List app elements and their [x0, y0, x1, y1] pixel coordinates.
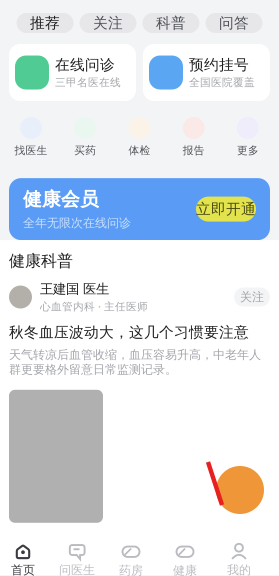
staticText: 买药: [74, 144, 96, 157]
staticText: 关注: [93, 14, 123, 32]
staticText: 王建国 医生: [40, 281, 109, 297]
button[interactable]: 报告: [167, 117, 221, 157]
staticText: 我的: [227, 563, 251, 576]
button[interactable]: 在线问诊: [9, 44, 136, 101]
staticText: 关注: [240, 290, 264, 304]
staticText: 预约挂号: [189, 56, 249, 74]
staticText: 健康: [173, 563, 197, 576]
staticText: 科普: [156, 14, 186, 32]
staticText: 全国医院覆盖: [189, 76, 255, 89]
staticText: 报告: [183, 144, 205, 157]
button[interactable]: 我的: [212, 544, 266, 576]
button[interactable]: 找医生: [4, 117, 58, 157]
button[interactable]: Compose: [216, 466, 264, 514]
button[interactable]: 首页: [0, 544, 50, 576]
button[interactable]: 关注: [234, 287, 270, 306]
staticText: 天气转凉后血管收缩，血压容易升高，中老年人群更要格外留意日常监测记录。: [9, 347, 261, 377]
staticText: 立即开通: [196, 200, 256, 218]
button[interactable]: 问医生: [50, 544, 104, 576]
button[interactable]: 健康会员: [9, 178, 270, 240]
staticText: 药房: [119, 563, 143, 576]
staticText: 更多: [237, 144, 259, 157]
button[interactable]: 预约挂号: [143, 44, 270, 101]
button[interactable]: 科普: [142, 13, 199, 33]
staticText: 心血管内科 · 主任医师: [40, 299, 148, 313]
staticText: 三甲名医在线: [55, 76, 121, 89]
staticText: 秋冬血压波动大，这几个习惯要注意: [9, 323, 249, 341]
button[interactable]: 体检: [112, 117, 167, 157]
button[interactable]: 问答: [205, 13, 262, 33]
staticText: 推荐: [30, 14, 60, 32]
staticText: 问医生: [59, 563, 95, 576]
staticText: 找医生: [15, 144, 48, 157]
staticText: 健康科普: [9, 251, 73, 271]
button[interactable]: 关注: [79, 13, 136, 33]
button[interactable]: 买药: [58, 117, 112, 157]
staticText: 全年无限次在线问诊: [23, 216, 131, 230]
button[interactable]: 更多: [221, 117, 275, 157]
staticText: 健康会员: [23, 188, 99, 211]
staticText: 问答: [219, 14, 249, 32]
button[interactable]: 药房: [104, 543, 158, 576]
button[interactable]: 推荐: [16, 13, 73, 33]
staticText: 在线问诊: [55, 56, 115, 74]
staticText: 首页: [11, 563, 35, 576]
staticText: 体检: [128, 144, 150, 157]
button[interactable]: 健康: [158, 543, 212, 576]
